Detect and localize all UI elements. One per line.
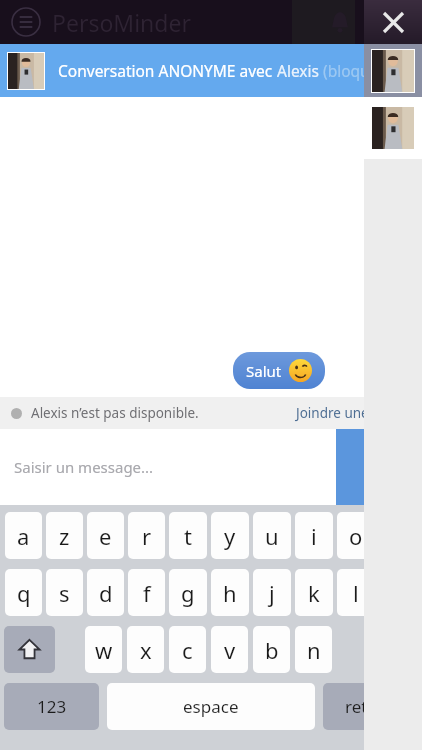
- staticText: Salut: [246, 361, 282, 381]
- button[interactable]: l: [337, 569, 375, 616]
- staticText: q: [17, 578, 31, 608]
- button[interactable]: g: [169, 569, 207, 616]
- staticText: v: [224, 635, 236, 665]
- button[interactable]: Messages: [362, 0, 412, 44]
- button[interactable]: Salut: [233, 352, 325, 389]
- button[interactable]: Shift: [4, 626, 55, 673]
- button[interactable]: a: [5, 512, 42, 559]
- staticText: j: [269, 578, 275, 608]
- staticText: e: [99, 521, 112, 551]
- button[interactable]: h: [211, 569, 249, 616]
- staticText: PersoMinder: [52, 7, 191, 38]
- staticText: Saisir un message...: [14, 457, 154, 477]
- button[interactable]: retour: [323, 683, 418, 730]
- button[interactable]: j: [253, 569, 291, 616]
- staticText: g: [181, 578, 195, 608]
- button[interactable]: c: [169, 626, 206, 673]
- button[interactable]: Saisir un message...: [0, 429, 336, 505]
- staticText: a: [17, 521, 30, 551]
- staticText: o: [349, 521, 363, 551]
- staticText: Conversation ANONYME avec: [58, 60, 277, 81]
- button[interactable]: k: [295, 569, 333, 616]
- staticText: 123: [37, 695, 67, 718]
- staticText: k: [308, 578, 320, 608]
- staticText: b: [265, 635, 279, 665]
- button[interactable]: e: [87, 512, 124, 559]
- button[interactable]: y: [211, 512, 249, 559]
- staticText: x: [140, 635, 152, 665]
- staticText: n: [307, 635, 321, 665]
- button[interactable]: f: [128, 569, 165, 616]
- button[interactable]: Menu: [8, 4, 44, 40]
- staticText: Joindre une photo: [296, 404, 411, 422]
- button[interactable]: 123: [4, 683, 99, 730]
- button[interactable]: r: [128, 512, 165, 559]
- button[interactable]: Send: [336, 429, 422, 505]
- staticText: f: [143, 578, 151, 608]
- staticText: (bloqué): [323, 60, 384, 81]
- button[interactable]: w: [85, 626, 122, 673]
- button[interactable]: i: [295, 512, 333, 559]
- staticText: Alexis n’est pas disponible.: [31, 404, 199, 422]
- button[interactable]: x: [127, 626, 164, 673]
- button[interactable]: espace: [107, 683, 315, 730]
- staticText: l: [353, 578, 359, 608]
- staticText: t: [184, 521, 192, 551]
- staticText: d: [99, 578, 113, 608]
- button[interactable]: o: [337, 512, 375, 559]
- button[interactable]: z: [46, 512, 83, 559]
- button[interactable]: t: [169, 512, 207, 559]
- button[interactable]: d: [87, 569, 124, 616]
- staticText: y: [224, 521, 236, 551]
- button[interactable]: q: [5, 569, 42, 616]
- button[interactable]: v: [211, 626, 248, 673]
- staticText: espace: [183, 695, 239, 718]
- button[interactable]: n: [295, 626, 332, 673]
- button[interactable]: u: [253, 512, 291, 559]
- staticText: retour: [345, 695, 396, 718]
- button[interactable]: Close: [374, 3, 412, 41]
- staticText: w: [95, 635, 113, 665]
- staticText: Alexis: [277, 60, 323, 81]
- staticText: u: [265, 521, 279, 551]
- button[interactable]: Joindre une photo: [296, 404, 411, 422]
- button[interactable]: Conversation ANONYME avec: [7, 44, 422, 97]
- staticText: i: [311, 521, 317, 551]
- staticText: z: [59, 521, 70, 551]
- button[interactable]: Notifications: [318, 0, 362, 44]
- staticText: h: [223, 578, 237, 608]
- staticText: r: [142, 521, 152, 551]
- staticText: s: [59, 578, 70, 608]
- staticText: c: [182, 635, 193, 665]
- button[interactable]: b: [253, 626, 290, 673]
- button[interactable]: s: [46, 569, 83, 616]
